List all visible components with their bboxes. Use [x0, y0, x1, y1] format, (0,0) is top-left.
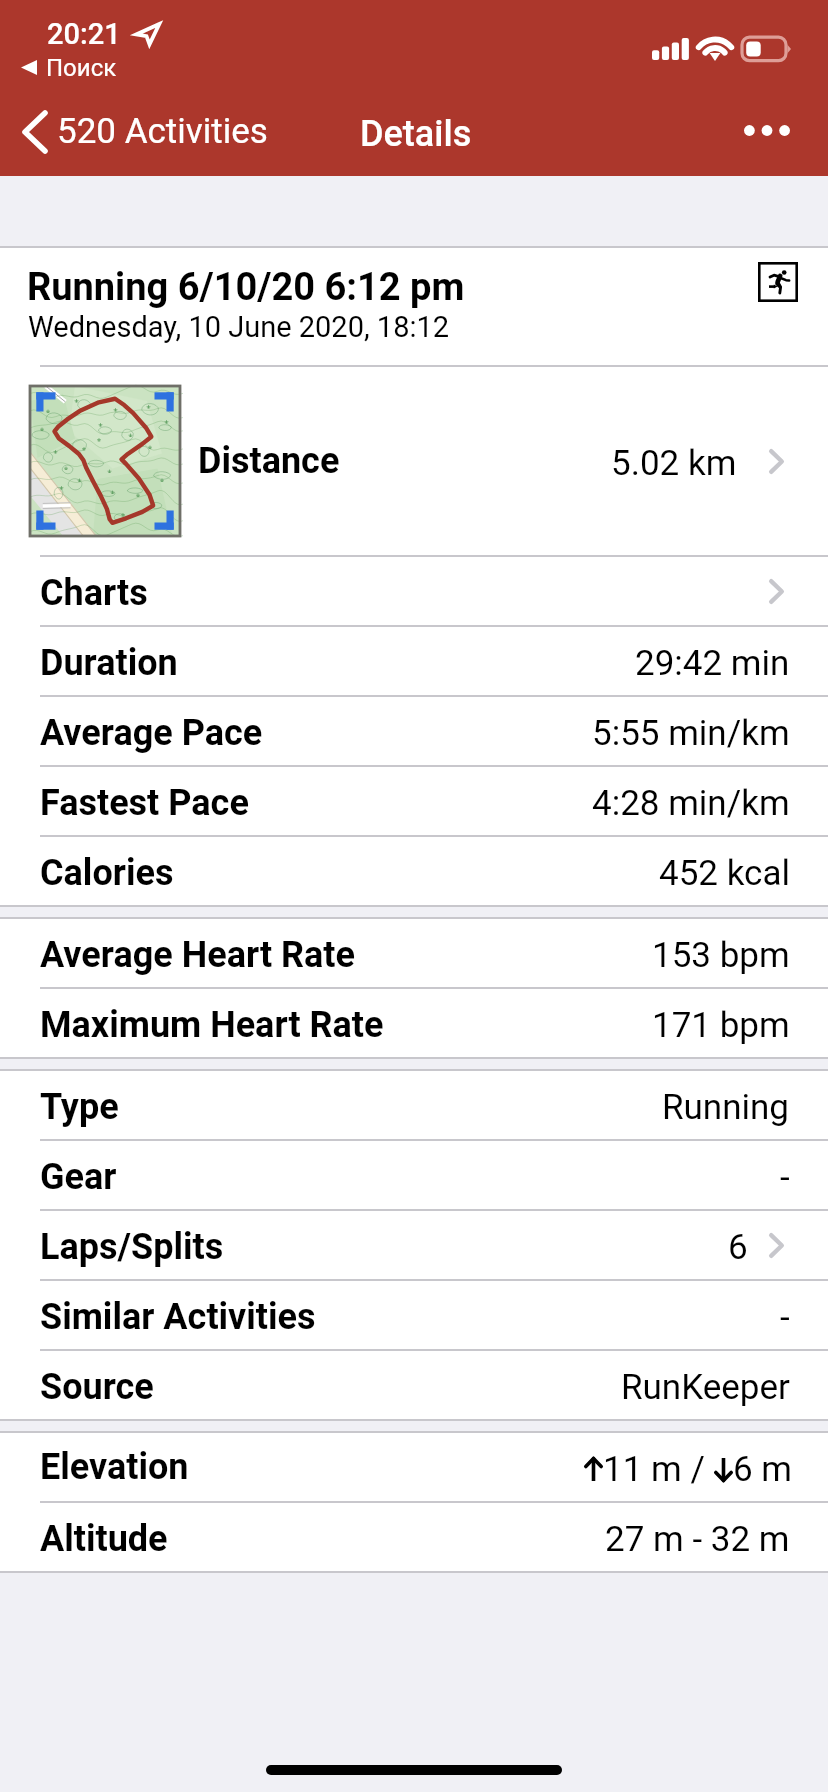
staticText: -: [780, 1157, 790, 1198]
staticText: 4:28 min/km: [592, 783, 790, 824]
staticText: Running 6/10/20 6:12 pm: [27, 265, 465, 310]
button[interactable]: Fastest Pace: [0, 767, 828, 835]
staticText: 171 bpm: [652, 1005, 790, 1046]
button[interactable]: Distance: [0, 367, 828, 555]
staticText: 520 Activities: [57, 111, 268, 152]
button[interactable]: Type: [0, 1071, 828, 1139]
staticText: Similar Activities: [40, 1296, 316, 1338]
staticText: 11 m /: [603, 1449, 714, 1490]
staticText: Maximum Heart Rate: [40, 1004, 384, 1046]
staticText: 27 m - 32 m: [605, 1519, 790, 1560]
button[interactable]: Calories: [0, 837, 828, 905]
button[interactable]: 520 Activities: [7, 106, 282, 158]
staticText: 29:42 min: [635, 643, 790, 684]
staticText: Calories: [40, 852, 174, 894]
button[interactable]: Source: [0, 1351, 828, 1419]
staticText: Running: [662, 1087, 790, 1128]
staticText: 452 kcal: [659, 853, 790, 894]
staticText: Duration: [40, 642, 178, 684]
button[interactable]: Maximum Heart Rate: [0, 989, 828, 1057]
staticText: RunKeeper: [621, 1367, 790, 1408]
button[interactable]: Charts: [0, 557, 828, 625]
staticText: Type: [40, 1086, 119, 1128]
staticText: Average Heart Rate: [40, 934, 355, 976]
staticText: 5:55 min/km: [592, 713, 790, 754]
staticText: Details: [360, 113, 472, 155]
staticText: Charts: [40, 572, 148, 614]
button[interactable]: Gear: [0, 1141, 828, 1209]
staticText: Fastest Pace: [40, 782, 249, 824]
staticText: Source: [40, 1366, 154, 1408]
staticText: Altitude: [40, 1518, 168, 1560]
button[interactable]: Laps/Splits: [0, 1211, 828, 1279]
button[interactable]: Altitude: [0, 1503, 828, 1571]
staticText: Wednesday, 10 June 2020, 18:12: [28, 310, 450, 344]
staticText: Elevation: [40, 1446, 189, 1488]
button[interactable]: Elevation: [0, 1433, 828, 1501]
staticText: 20:21: [47, 17, 121, 51]
button[interactable]: Average Heart Rate: [0, 919, 828, 987]
button[interactable]: Duration: [0, 627, 828, 695]
staticText: Gear: [40, 1156, 117, 1198]
staticText: -: [780, 1297, 790, 1338]
staticText: 153 bpm: [652, 935, 790, 976]
staticText: 5.02 km: [611, 443, 737, 484]
button[interactable]: Similar Activities: [0, 1281, 828, 1349]
staticText: 6: [728, 1227, 748, 1268]
button[interactable]: Average Pace: [0, 697, 828, 765]
staticText: 6 m: [733, 1449, 793, 1490]
button[interactable]: More options: [723, 104, 811, 157]
staticText: Average Pace: [40, 712, 263, 754]
staticText: Поиск: [46, 54, 117, 82]
staticText: Distance: [198, 440, 340, 482]
staticText: Laps/Splits: [40, 1226, 224, 1268]
